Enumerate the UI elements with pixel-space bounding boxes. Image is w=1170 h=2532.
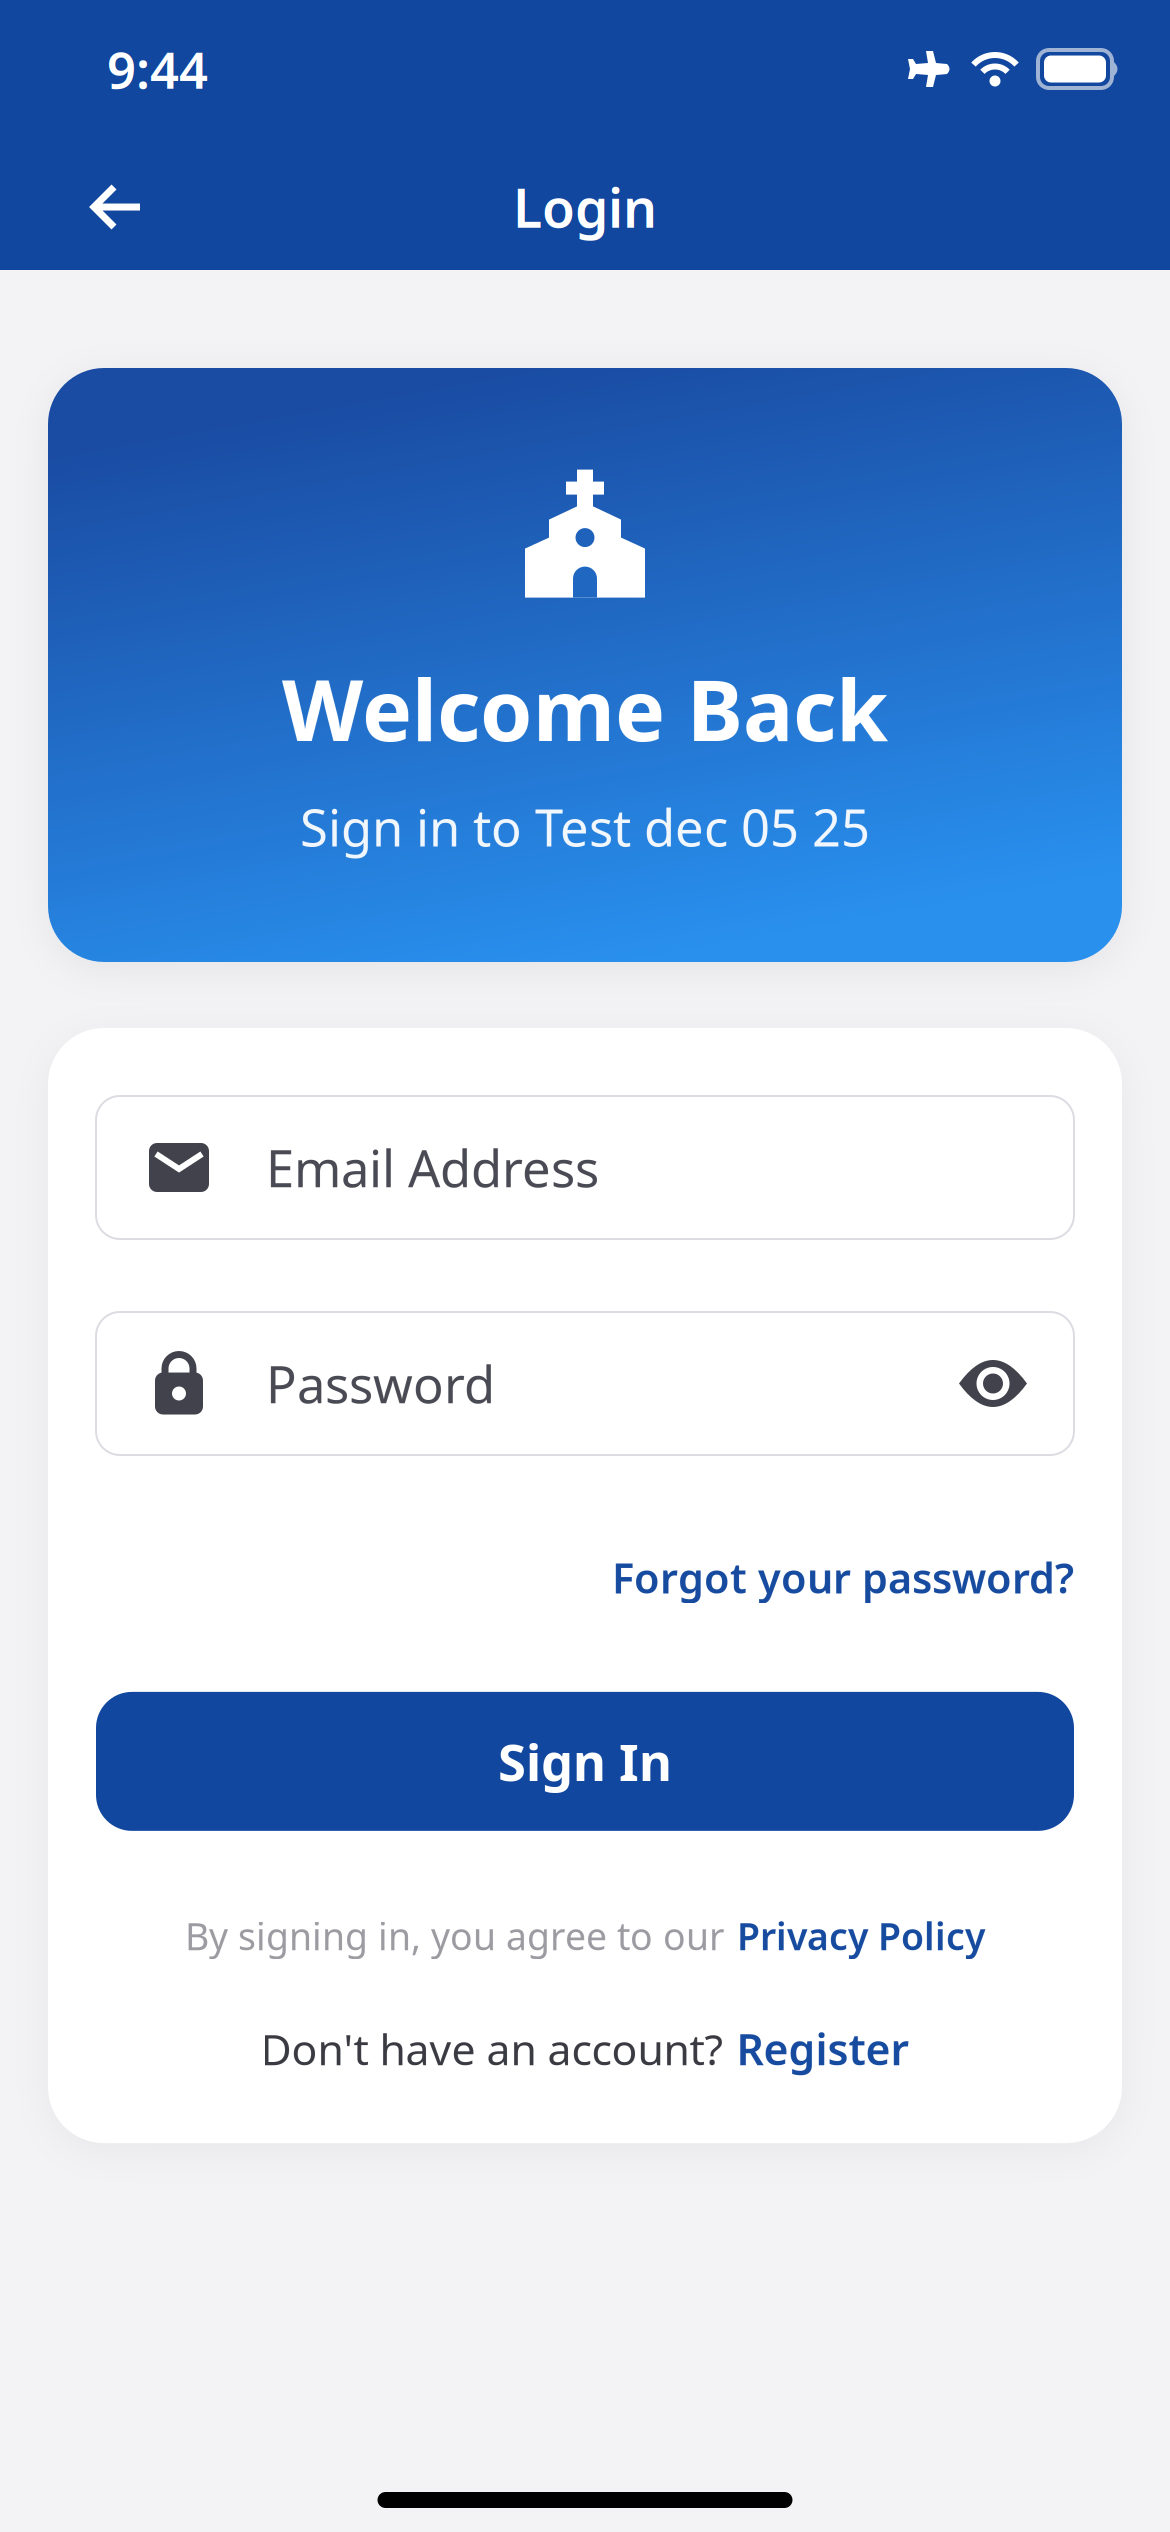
button[interactable]: Show password <box>959 1360 1074 1406</box>
staticText: Don't have an account? <box>260 2020 723 2077</box>
staticText: Sign In <box>498 1728 672 1795</box>
staticText: By signing in, you agree to our <box>185 1911 724 1960</box>
button[interactable]: Back <box>0 155 144 259</box>
staticText: Privacy Policy <box>737 1911 985 1960</box>
staticText: Email Address <box>266 1134 599 1201</box>
button[interactable]: Sign In <box>96 1692 1074 1831</box>
staticText: Login <box>513 172 657 242</box>
button[interactable]: Privacy Policy <box>737 1911 985 1960</box>
button[interactable]: Register <box>736 2020 909 2077</box>
staticText: Forgot your password? <box>612 1550 1074 1605</box>
staticText: Register <box>736 2020 909 2077</box>
button[interactable]: Forgot your password? <box>612 1550 1074 1605</box>
staticText: 9:44 <box>107 35 208 103</box>
staticText: Password <box>266 1350 495 1417</box>
staticText: Welcome Back <box>282 653 888 764</box>
staticText: Sign in to Test dec 05 25 <box>300 793 870 860</box>
